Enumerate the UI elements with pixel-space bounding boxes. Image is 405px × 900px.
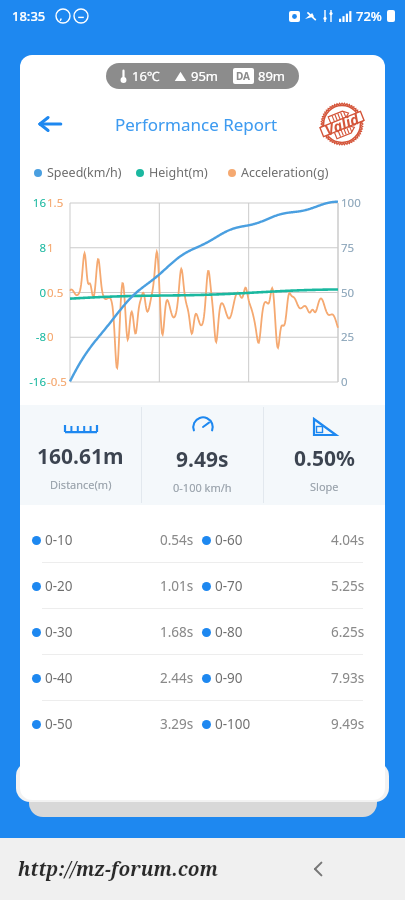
staticText: 0-100	[215, 715, 251, 733]
staticText: 25	[341, 329, 371, 345]
staticText: 16	[20, 195, 46, 211]
staticText: 0.5	[47, 285, 69, 301]
staticText: 160.61m	[37, 442, 124, 471]
staticText: 8	[20, 240, 46, 256]
button[interactable]: 9.49s	[142, 405, 263, 505]
button[interactable]: 0-40	[20, 655, 385, 700]
staticText: Slope	[310, 479, 339, 494]
staticText: 0.54s	[160, 531, 194, 549]
staticText: Height(m)	[149, 164, 208, 181]
staticText: 0-20	[45, 577, 73, 595]
staticText: 0	[47, 329, 69, 345]
staticText: Valid	[322, 108, 362, 140]
button[interactable]: 0-20	[20, 563, 385, 608]
staticText: DA	[236, 69, 251, 83]
staticText: 4.04s	[331, 531, 365, 549]
staticText: 3.29s	[160, 715, 194, 733]
staticText: 5.25s	[331, 577, 365, 595]
staticText: 0-100 km/h	[173, 480, 232, 495]
staticText: 0-70	[215, 577, 243, 595]
staticText: http://mz-forum.com	[18, 856, 218, 882]
button[interactable]: 0.50%	[264, 405, 385, 505]
staticText: Speed(km/h)	[47, 164, 122, 181]
staticText: -8	[20, 329, 46, 345]
staticText: 0-90	[215, 669, 243, 687]
staticText: 95m	[191, 67, 219, 85]
staticText: 0-10	[45, 531, 73, 549]
staticText: -16	[20, 374, 46, 390]
staticText: -0.5	[47, 374, 69, 390]
staticText: 50	[341, 285, 371, 301]
button[interactable]: 160.61m	[20, 405, 141, 505]
staticText: 1.01s	[160, 577, 194, 595]
button[interactable]: 16℃	[106, 63, 299, 89]
staticText: 100	[341, 195, 371, 211]
staticText: Performance Report	[115, 113, 278, 136]
staticText: Distance(m)	[50, 477, 112, 492]
staticText: 18:35	[12, 7, 46, 25]
staticText: 1.68s	[160, 623, 194, 641]
button[interactable]: Back	[299, 849, 339, 889]
staticText: 0-40	[45, 669, 73, 687]
staticText: 0-30	[45, 623, 73, 641]
staticText: 0	[341, 374, 371, 390]
staticText: 0-80	[215, 623, 243, 641]
staticText: 0.50%	[294, 444, 355, 473]
staticText: Acceleration(g)	[241, 164, 329, 181]
staticText: 6.25s	[331, 623, 365, 641]
staticText: 1	[47, 240, 69, 256]
staticText: 9.49s	[176, 445, 229, 474]
staticText: 72%	[356, 7, 382, 25]
staticText: 16℃	[132, 67, 160, 85]
staticText: 0-50	[45, 715, 73, 733]
staticText: 0-60	[215, 531, 243, 549]
button[interactable]: 0-30	[20, 609, 385, 654]
staticText: 1.5	[47, 195, 69, 211]
staticText: 89m	[258, 67, 286, 85]
staticText: 75	[341, 240, 371, 256]
staticText: 2.44s	[160, 669, 194, 687]
staticText: 9.49s	[331, 715, 365, 733]
button[interactable]: Back	[28, 102, 72, 146]
button[interactable]: 0-50	[20, 701, 385, 746]
staticText: 0	[20, 285, 46, 301]
staticText: 7.93s	[331, 669, 365, 687]
button[interactable]: 0-10	[20, 517, 385, 562]
